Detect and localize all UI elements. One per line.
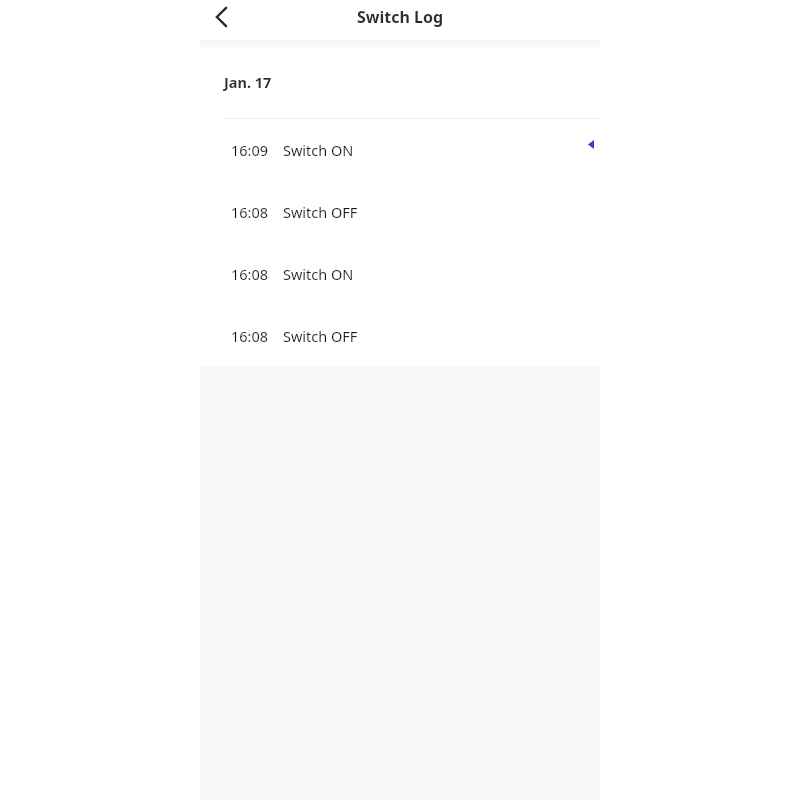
staticText: Switch OFF [283, 202, 358, 222]
button[interactable]: 16:09 [200, 119, 600, 181]
staticText: Switch OFF [283, 326, 358, 346]
staticText: 16:08 [231, 326, 269, 346]
staticText: Jan. 17 [224, 72, 272, 92]
staticText: Switch Log [357, 6, 444, 28]
staticText: 16:08 [231, 202, 269, 222]
button[interactable]: Back [204, 1, 236, 33]
button[interactable]: 16:08 [200, 305, 600, 366]
staticText: 16:08 [231, 264, 269, 284]
staticText: 16:09 [231, 140, 269, 160]
staticText: Switch ON [283, 140, 354, 160]
button[interactable]: 16:08 [200, 243, 600, 305]
staticText: Switch ON [283, 264, 354, 284]
button[interactable]: 16:08 [200, 181, 600, 243]
